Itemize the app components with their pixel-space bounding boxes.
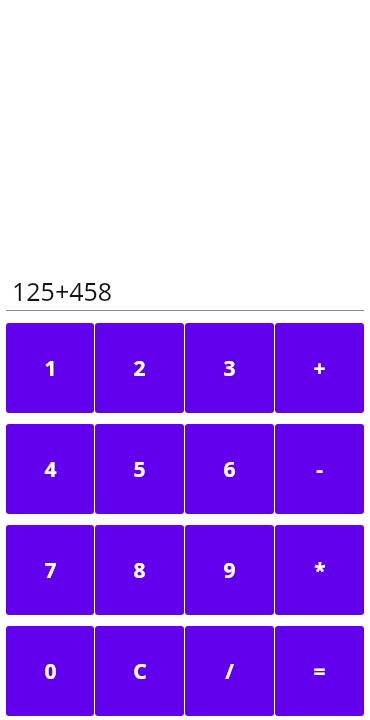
- staticText: 1: [44, 354, 57, 383]
- button[interactable]: 5: [95, 424, 184, 514]
- button[interactable]: =: [275, 626, 364, 716]
- staticText: =: [313, 657, 326, 686]
- staticText: 2: [133, 354, 146, 383]
- staticText: -: [316, 455, 323, 484]
- staticText: +: [313, 354, 326, 383]
- button[interactable]: 1: [6, 323, 94, 413]
- staticText: 125+458: [12, 274, 113, 308]
- button[interactable]: 6: [185, 424, 274, 514]
- staticText: C: [133, 657, 147, 686]
- button[interactable]: 0: [6, 626, 94, 716]
- button[interactable]: 2: [95, 323, 184, 413]
- button[interactable]: 3: [185, 323, 274, 413]
- staticText: 9: [223, 556, 236, 585]
- staticText: 4: [44, 455, 57, 484]
- button[interactable]: /: [185, 626, 274, 716]
- staticText: 6: [223, 455, 236, 484]
- button[interactable]: 7: [6, 525, 94, 615]
- button[interactable]: -: [275, 424, 364, 514]
- button[interactable]: 4: [6, 424, 94, 514]
- button[interactable]: *: [275, 525, 364, 615]
- button[interactable]: C: [95, 626, 184, 716]
- button[interactable]: 125+458: [6, 272, 364, 310]
- staticText: 7: [44, 556, 57, 585]
- staticText: 5: [133, 455, 146, 484]
- button[interactable]: 8: [95, 525, 184, 615]
- staticText: /: [225, 657, 234, 686]
- staticText: 3: [223, 354, 236, 383]
- staticText: 0: [44, 657, 57, 686]
- staticText: *: [314, 556, 326, 585]
- button[interactable]: +: [275, 323, 364, 413]
- staticText: 8: [133, 556, 146, 585]
- button[interactable]: 9: [185, 525, 274, 615]
